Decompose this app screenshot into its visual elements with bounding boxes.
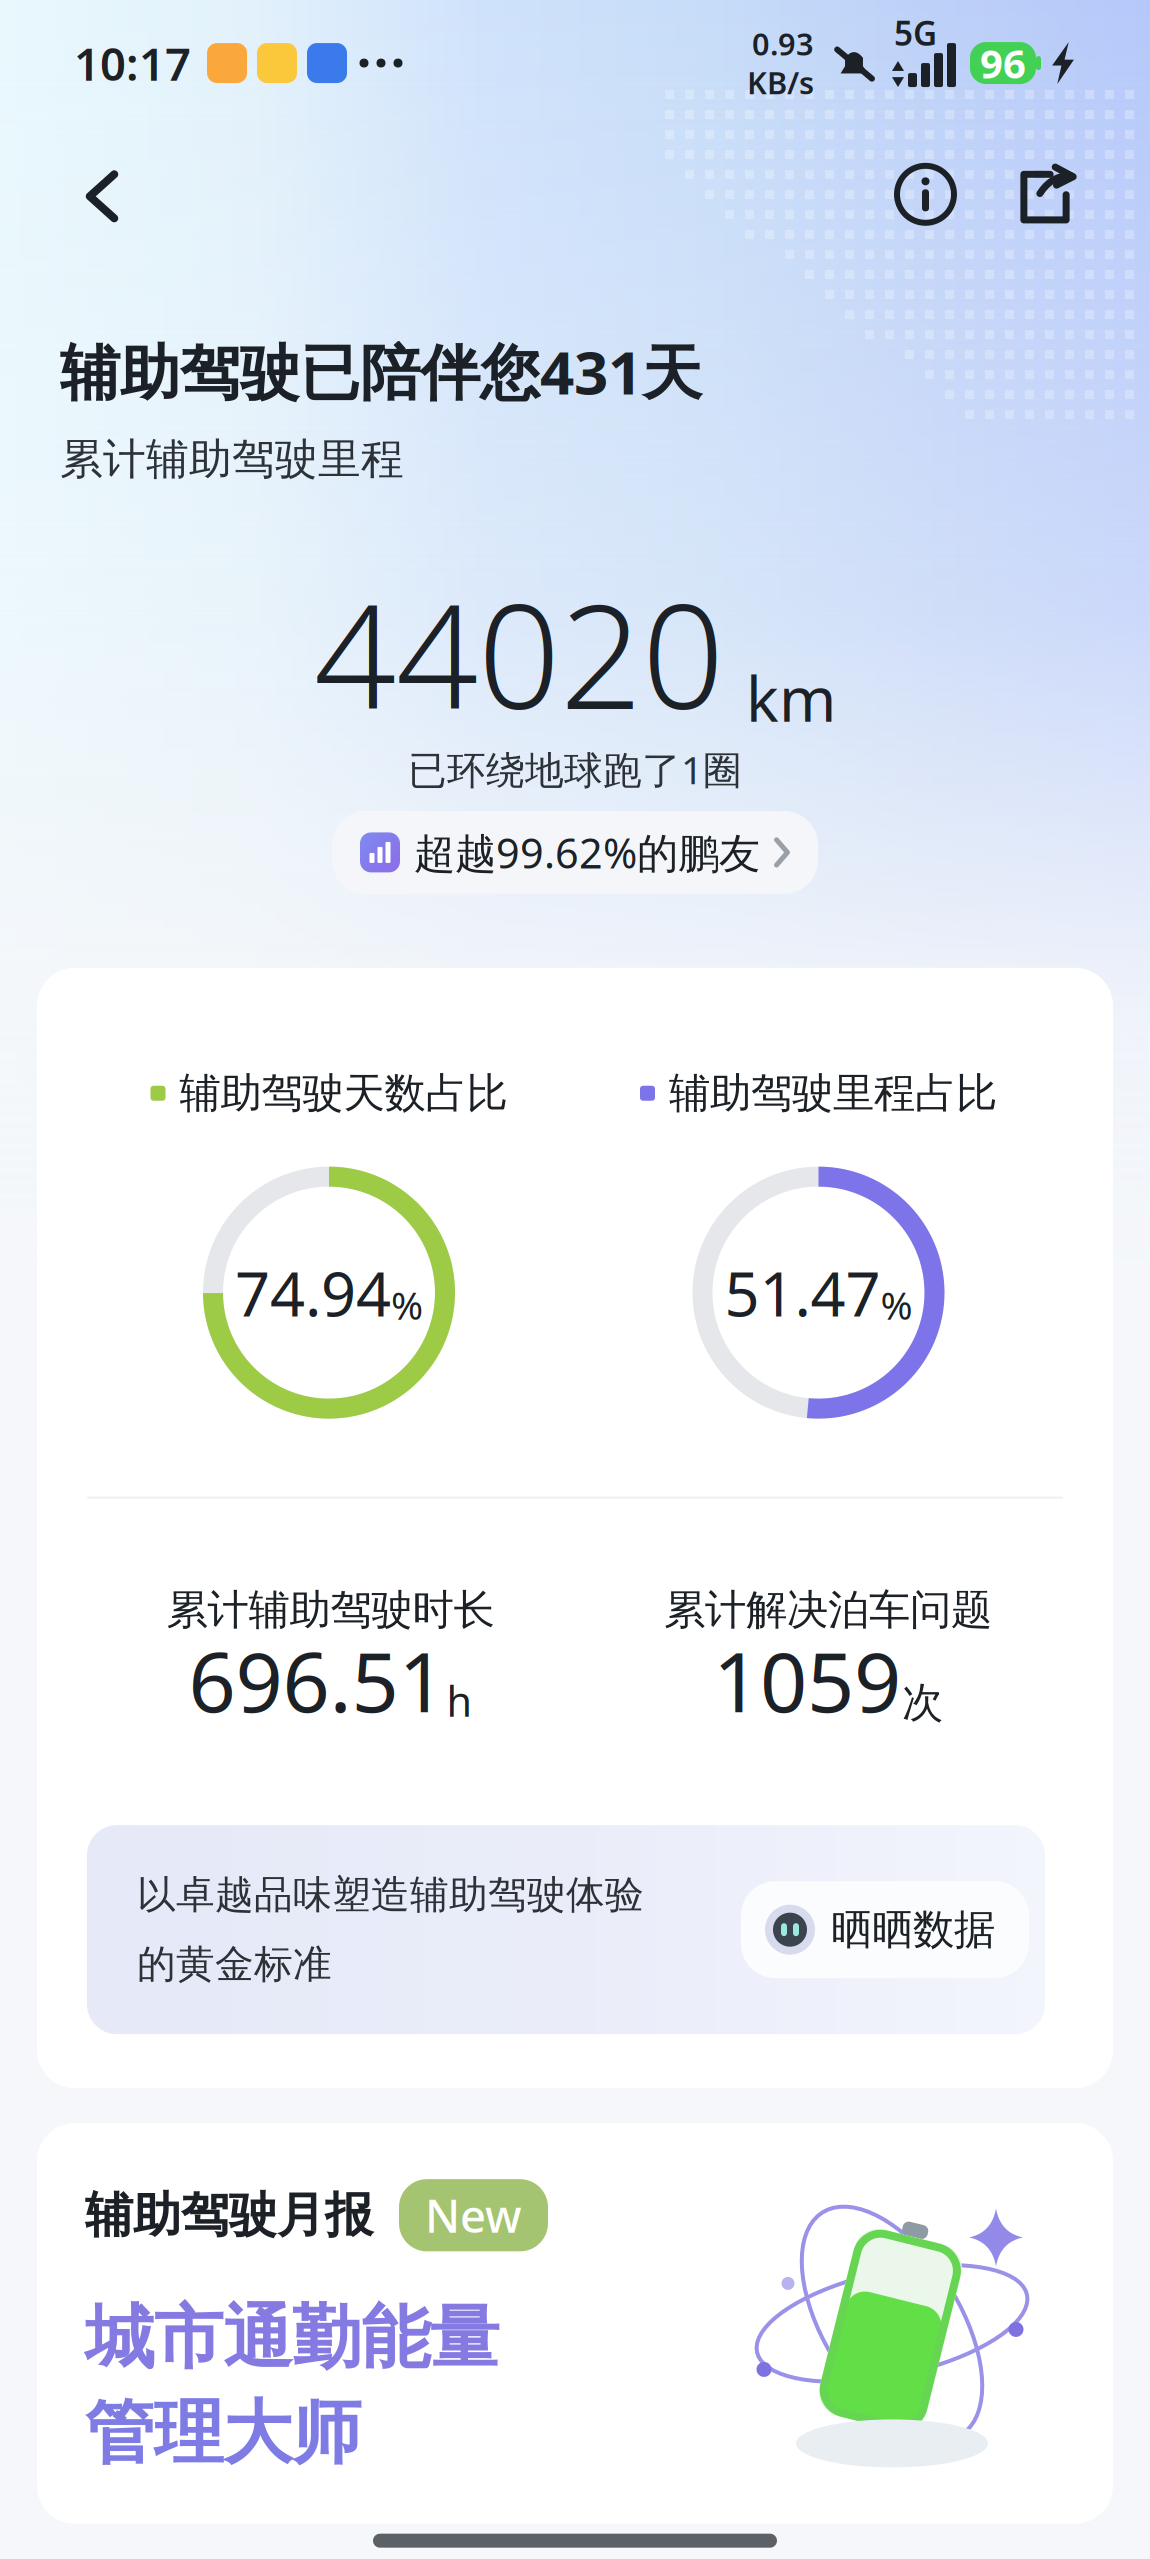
button[interactable]: Back [59, 143, 145, 237]
staticText: 5G [894, 11, 937, 55]
staticText: 累计辅助驾驶时长 [166, 1585, 494, 1635]
button[interactable]: Share [999, 146, 1091, 234]
staticText: 辅助驾驶里程占比 [669, 1068, 997, 1119]
staticText: 辅助驾驶天数占比 [179, 1068, 507, 1119]
staticText: 10:17 [74, 33, 191, 93]
staticText: 次 [902, 1677, 943, 1728]
staticText: 以卓越品味塑造辅助驾驶体验 [137, 1871, 644, 1919]
staticText: 1059 [713, 1625, 901, 1735]
staticText: 已环绕地球跑了1圈 [408, 744, 742, 795]
staticText: 辅助驾驶月报 [85, 2186, 373, 2245]
staticText: New [425, 2185, 522, 2245]
staticText: 51.47 [724, 1252, 880, 1333]
staticText: 的黄金标准 [137, 1941, 332, 1988]
staticText: 累计解决泊车问题 [664, 1585, 992, 1635]
button[interactable]: 超越99.62%的鹏友 [332, 811, 818, 894]
button[interactable]: 晒晒数据 [741, 1881, 1029, 1978]
staticText: 696.51 [188, 1625, 445, 1735]
staticText: 累计辅助驾驶里程 [60, 433, 404, 485]
staticText: 城市通勤能量 [85, 2295, 499, 2381]
staticText: 超越99.62%的鹏友 [414, 825, 760, 880]
staticText: h [446, 1673, 472, 1728]
button[interactable]: Information [880, 145, 971, 236]
staticText: % [391, 1279, 423, 1330]
staticText: 晒晒数据 [831, 1904, 995, 1955]
staticText: 96 [980, 36, 1026, 90]
staticText: km [746, 657, 836, 739]
staticText: 74.94 [235, 1252, 391, 1333]
staticText: 44020 [314, 557, 724, 749]
staticText: 辅助驾驶已陪伴您431天 [60, 331, 702, 411]
staticText: 0.93 [752, 23, 814, 64]
staticText: % [880, 1279, 912, 1330]
staticText: 管理大师 [85, 2390, 361, 2476]
staticText: KB/s [747, 62, 814, 103]
